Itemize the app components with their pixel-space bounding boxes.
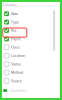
staticText: Status bbox=[11, 62, 21, 66]
staticText: Class bbox=[11, 45, 20, 49]
staticText: Method bbox=[11, 70, 23, 75]
button[interactable]: Type bbox=[0, 18, 50, 26]
button[interactable]: No. bbox=[0, 26, 50, 35]
button[interactable]: Date bbox=[0, 9, 50, 18]
staticText: Source bbox=[11, 79, 22, 83]
staticText: Customize bbox=[10, 88, 27, 93]
button[interactable]: Status bbox=[0, 60, 50, 68]
button[interactable]: Payee bbox=[0, 35, 50, 43]
staticText: Date bbox=[11, 11, 18, 16]
button[interactable]: Method bbox=[0, 68, 50, 77]
staticText: Columns bbox=[3, 3, 17, 7]
button[interactable]: Location bbox=[0, 51, 50, 60]
button[interactable]: Class bbox=[0, 43, 50, 51]
staticText: No. bbox=[11, 28, 17, 33]
staticText: Payee bbox=[11, 37, 21, 41]
staticText: Type bbox=[11, 20, 19, 24]
button[interactable]: Source bbox=[0, 77, 50, 85]
staticText: Location bbox=[11, 53, 25, 58]
